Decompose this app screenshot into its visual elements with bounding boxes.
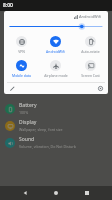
- button[interactable]: Battery: [0, 100, 112, 117]
- button[interactable]: AndroidWifi: [38, 35, 73, 55]
- button[interactable]: Display: [0, 117, 112, 134]
- button[interactable]: Screen Cast: [73, 59, 108, 79]
- button[interactable]: VPN: [4, 35, 38, 55]
- button[interactable]: Edit tiles: [8, 84, 16, 92]
- staticText: Airplane mode: [44, 73, 68, 78]
- staticText: Battery: [19, 102, 37, 109]
- staticText: AndroidWifi: [79, 14, 102, 19]
- staticText: Volume, vibration, Do Not Disturb: [19, 144, 76, 149]
- button[interactable]: Airplane mode: [38, 59, 73, 79]
- button[interactable]: Recent apps: [81, 187, 93, 199]
- button[interactable]: Auto-rotate: [73, 35, 108, 55]
- staticText: 8:00: [3, 2, 13, 9]
- button[interactable]: Sound: [0, 134, 112, 151]
- staticText: 100%: [19, 110, 29, 115]
- staticText: Display: [19, 119, 37, 126]
- staticText: Wallpaper, sleep, font size: [19, 127, 63, 132]
- staticText: Mobile data: [12, 73, 31, 78]
- staticText: AndroidWifi: [46, 49, 65, 54]
- button[interactable]: Mobile data: [4, 59, 38, 79]
- button[interactable]: Back: [19, 187, 31, 199]
- button[interactable]: Brightness: [10, 23, 102, 30]
- staticText: Sound: [19, 136, 35, 143]
- staticText: Screen Cast: [81, 73, 100, 78]
- button[interactable]: Home: [50, 187, 62, 199]
- staticText: Auto-rotate: [81, 49, 100, 54]
- button[interactable]: Settings: [96, 84, 104, 92]
- staticText: VPN: [18, 49, 25, 54]
